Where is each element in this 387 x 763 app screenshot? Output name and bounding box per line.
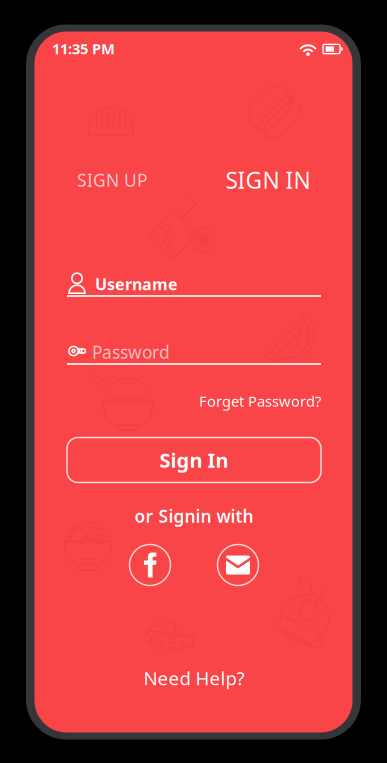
staticText: 11:35 PM xyxy=(52,39,115,58)
button[interactable]: SIGN UP xyxy=(57,162,167,198)
button[interactable]: Sign in with Facebook xyxy=(129,544,170,585)
staticText: Sign In xyxy=(159,447,228,473)
staticText: SIGN IN xyxy=(225,165,310,195)
staticText: Need Help? xyxy=(143,666,244,690)
button[interactable]: Need Help? xyxy=(124,664,264,692)
staticText: SIGN UP xyxy=(77,168,147,191)
button[interactable]: Sign in with Email xyxy=(217,544,258,585)
staticText: Password xyxy=(92,340,170,363)
button[interactable]: Forget Password? xyxy=(0,0,387,763)
staticText: Forget Password? xyxy=(199,391,321,411)
button[interactable]: SIGN IN xyxy=(209,160,327,200)
staticText: or Signin with xyxy=(134,504,253,527)
staticText: Username xyxy=(95,273,178,295)
button[interactable]: Sign In xyxy=(67,437,321,482)
